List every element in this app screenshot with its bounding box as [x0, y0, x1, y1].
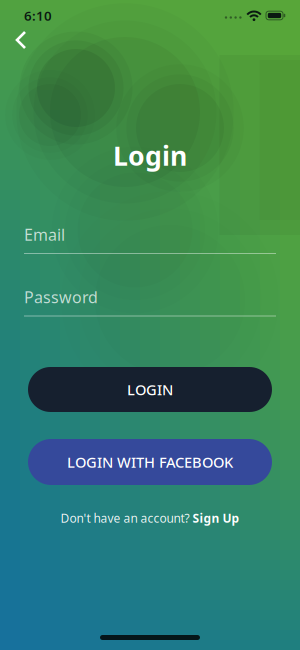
button[interactable]: Email — [24, 224, 276, 254]
staticText: 6:10 — [24, 7, 52, 24]
staticText: Sign Up — [192, 510, 239, 526]
staticText: Don't have an account? — [60, 510, 189, 526]
staticText: Email — [24, 224, 65, 245]
button[interactable]: LOGIN — [28, 367, 272, 412]
staticText: LOGIN WITH FACEBOOK — [67, 452, 233, 472]
staticText: LOGIN — [127, 380, 173, 399]
button[interactable]: Back — [1, 20, 41, 60]
staticText: Password — [24, 286, 98, 308]
button[interactable]: LOGIN WITH FACEBOOK — [28, 439, 272, 485]
button[interactable]: Password — [24, 286, 276, 316]
staticText: Login — [113, 138, 187, 173]
button[interactable]: Sign Up — [192, 510, 239, 526]
